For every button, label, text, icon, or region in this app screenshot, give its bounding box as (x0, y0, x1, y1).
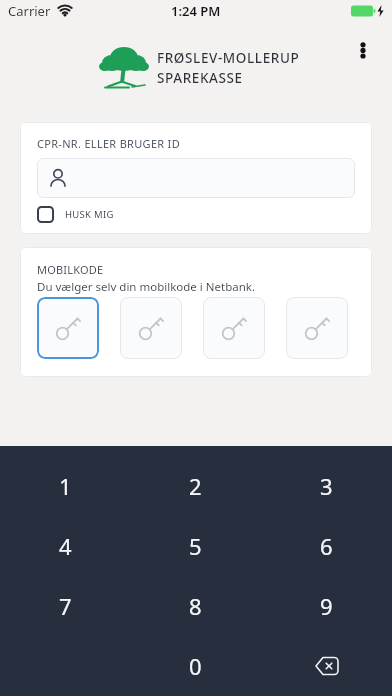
staticText: MOBILKODE (37, 262, 104, 277)
button[interactable]: 5 (130, 516, 261, 576)
button[interactable] (120, 297, 182, 359)
button[interactable]: 3 (261, 456, 392, 516)
button[interactable]: 7 (0, 576, 130, 636)
button[interactable]: 2 (130, 456, 261, 516)
staticText: 6 (320, 531, 333, 561)
staticText: 0 (189, 651, 202, 681)
staticText: CPR-NR. ELLER BRUGER ID (37, 136, 180, 151)
button[interactable]: 9 (261, 576, 392, 636)
button[interactable] (351, 35, 375, 65)
staticText: Du vælger selv din mobilkode i Netbank. (37, 279, 256, 295)
button[interactable] (203, 297, 265, 359)
button[interactable]: 8 (130, 576, 261, 636)
staticText: 8 (189, 591, 202, 621)
staticText: HUSK MIG (65, 208, 114, 221)
button[interactable] (37, 297, 99, 359)
staticText: 1:24 PM (171, 2, 221, 20)
button[interactable] (286, 297, 348, 359)
staticText: Carrier (8, 2, 51, 20)
staticText: 7 (59, 591, 72, 621)
button[interactable] (261, 636, 392, 696)
staticText: 1 (59, 471, 72, 501)
button[interactable]: HUSK MIG (37, 206, 114, 223)
staticText: FRØSLEV-MOLLERUP (157, 49, 300, 67)
staticText: SPAREKASSE (157, 69, 243, 87)
staticText: 9 (320, 591, 333, 621)
button[interactable]: 4 (0, 516, 130, 576)
staticText: 3 (320, 471, 333, 501)
button[interactable]: 1 (0, 456, 130, 516)
staticText: 2 (189, 471, 202, 501)
staticText: 5 (189, 531, 202, 561)
button[interactable]: 6 (261, 516, 392, 576)
staticText: 4 (59, 531, 72, 561)
button[interactable] (37, 158, 355, 198)
button[interactable]: 0 (130, 636, 261, 696)
